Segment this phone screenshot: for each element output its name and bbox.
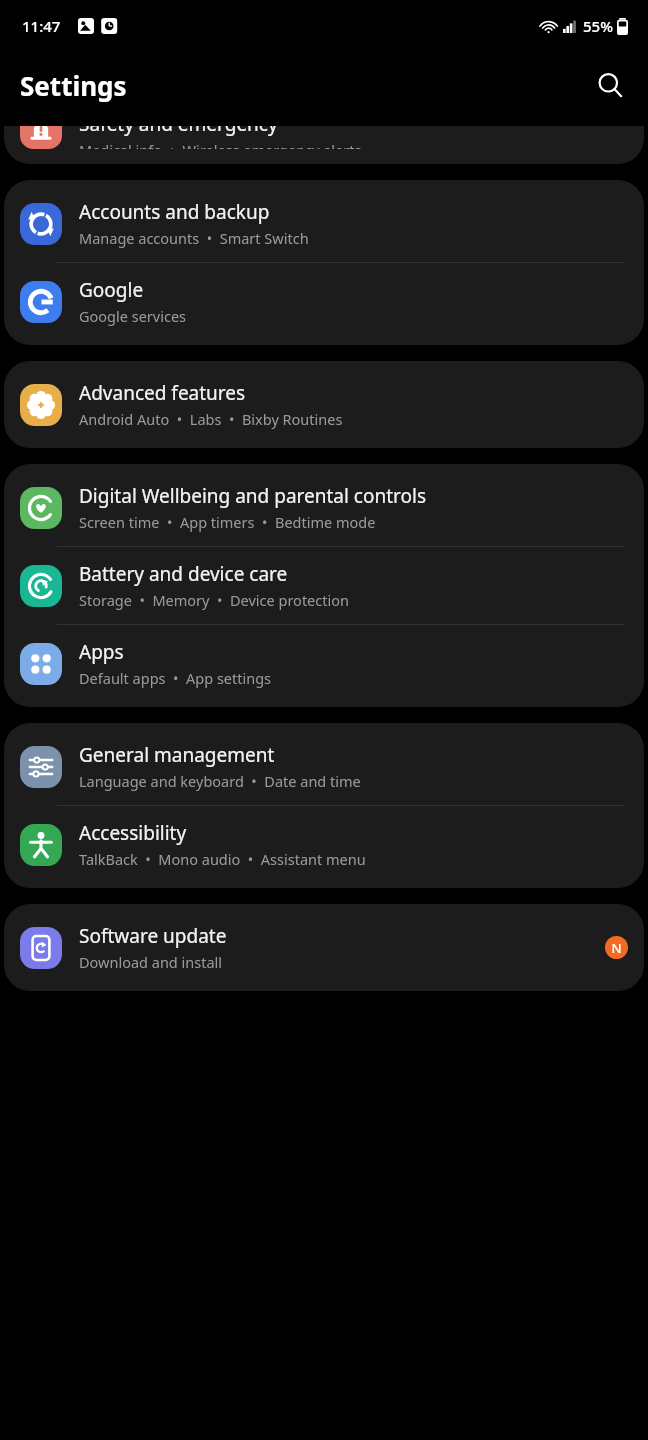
button[interactable]: Safety and emergency <box>4 126 644 164</box>
other: General management <box>20 746 62 788</box>
staticText: 11:47 <box>22 16 61 36</box>
staticText: 55% <box>583 16 613 36</box>
staticText: Digital Wellbeing and parental controls <box>79 483 427 509</box>
staticText: Download and install <box>79 952 223 972</box>
other: Apps <box>20 643 62 685</box>
button[interactable]: Apps <box>4 625 644 702</box>
staticText: TalkBack • Mono audio • Assistant menu <box>79 849 366 869</box>
staticText: Medical info • Wireless emergency alerts <box>79 140 362 149</box>
staticText: Apps <box>79 639 124 665</box>
staticText: Software update <box>79 923 227 949</box>
staticText: General management <box>79 742 275 768</box>
staticText: Settings <box>20 68 127 103</box>
staticText: Google <box>79 277 144 303</box>
staticText: Storage • Memory • Device protection <box>79 590 349 610</box>
button[interactable]: Search <box>586 61 634 109</box>
other: Google <box>20 281 62 323</box>
other: Accounts and backup <box>20 203 62 245</box>
staticText: Language and keyboard • Date and time <box>79 771 361 791</box>
staticText: Safety and emergency <box>79 126 278 137</box>
staticText: Advanced features <box>79 380 246 406</box>
staticText: N <box>611 939 622 957</box>
other: Battery and device care <box>20 565 62 607</box>
staticText: Accounts and backup <box>79 199 270 225</box>
staticText: Battery and device care <box>79 561 288 587</box>
other: Digital Wellbeing and parental controls <box>20 487 62 529</box>
staticText: Accessibility <box>79 820 187 846</box>
staticText: Manage accounts • Smart Switch <box>79 228 309 248</box>
button[interactable]: General management <box>4 728 644 805</box>
other: Advanced features <box>20 384 62 426</box>
button[interactable]: Google <box>4 263 644 340</box>
other: Safety and emergency <box>20 126 62 149</box>
other: Accessibility <box>20 824 62 866</box>
button[interactable]: Software update <box>4 909 644 986</box>
staticText: Default apps • App settings <box>79 668 272 688</box>
other: Software update <box>20 927 62 969</box>
button[interactable]: Accounts and backup <box>4 185 644 262</box>
button[interactable]: Advanced features <box>4 366 644 443</box>
button[interactable]: Accessibility <box>4 806 644 883</box>
staticText: Google services <box>79 306 187 326</box>
staticText: Screen time • App timers • Bedtime mode <box>79 512 376 532</box>
button[interactable]: Digital Wellbeing and parental controls <box>4 469 644 546</box>
button[interactable]: Battery and device care <box>4 547 644 624</box>
staticText: Android Auto • Labs • Bixby Routines <box>79 409 343 429</box>
